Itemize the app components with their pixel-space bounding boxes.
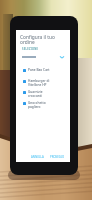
staticText: SELEZIONE [22, 47, 39, 51]
button[interactable]: Gnocchetto [23, 101, 70, 112]
button[interactable]: Guarnizie [23, 90, 70, 101]
button[interactable]: Pane Bao Cart [23, 68, 70, 79]
staticText: Vitellone HP [28, 83, 47, 87]
staticText: Configura il tuo ordine [20, 34, 55, 45]
staticText: Hamburger di [28, 79, 50, 83]
button[interactable]: Expand [22, 55, 64, 59]
staticText: Pane Bao Cart [28, 68, 50, 72]
staticText: pagliero [28, 105, 41, 109]
button[interactable]: Hamburger di [23, 79, 70, 90]
button[interactable]: PROSEGUI [48, 154, 66, 160]
staticText: croccanti [28, 94, 42, 98]
staticText: Guarnizie [28, 90, 43, 94]
other: Expand [60, 55, 64, 59]
staticText: Gnocchetto [28, 101, 46, 105]
staticText: ANNULLA [31, 155, 44, 159]
button[interactable]: ANNULLA [29, 154, 46, 160]
staticText: PROSEGUI [50, 155, 64, 159]
